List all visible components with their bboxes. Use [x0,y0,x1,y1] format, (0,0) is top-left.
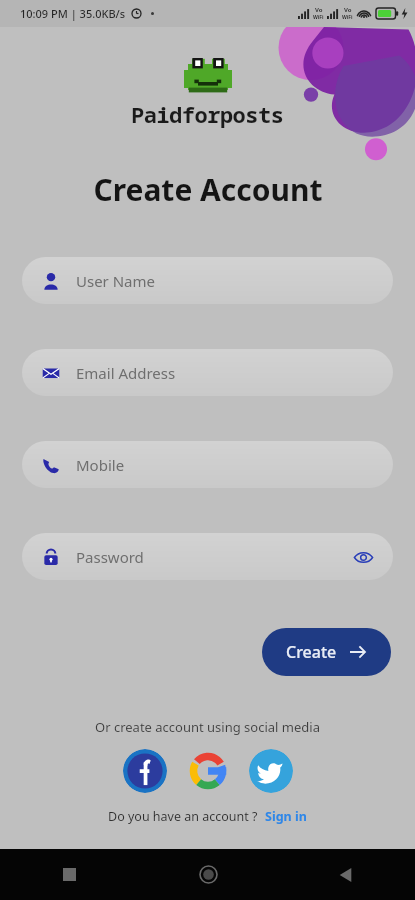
button[interactable]: Do you have an account ? [100,806,315,827]
button[interactable]: Create [262,628,391,676]
staticText: WiFi [342,14,353,21]
button[interactable]: Sign up with Facebook [123,749,167,793]
staticText: Create Account [93,169,323,210]
staticText: Email Address [76,363,176,383]
button[interactable]: Email Address [22,349,393,396]
button[interactable]: Show password [351,545,375,569]
staticText: Password [76,547,144,567]
staticText: Sign in [265,808,307,825]
button[interactable]: Home [139,849,277,900]
button[interactable]: Sign up with Google [186,749,230,793]
button[interactable]: Password [22,533,393,580]
staticText: Or create account using social media [95,718,320,736]
button[interactable]: Sign up with Twitter [249,749,293,793]
staticText: Create [286,641,337,663]
staticText: Vo [344,6,352,14]
staticText: Paidforposts [131,99,284,129]
button[interactable]: Recent apps [0,849,139,900]
staticText: Mobile [76,455,125,475]
button[interactable]: User Name [22,257,393,304]
staticText: Do you have an account ? [108,808,258,825]
staticText: Vo [315,6,323,14]
button[interactable]: Back [277,849,415,900]
staticText: 10:09 PM | 35.0KB/s [20,6,126,21]
staticText: User Name [76,271,156,291]
button[interactable]: Mobile [22,441,393,488]
staticText: WiFi [313,14,324,21]
